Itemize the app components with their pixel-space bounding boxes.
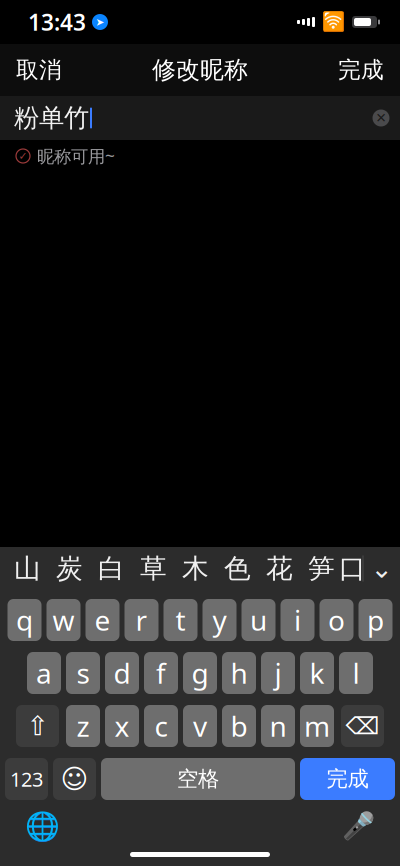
button[interactable]: m	[300, 705, 334, 747]
staticText: v	[193, 707, 207, 745]
staticText: 白	[98, 552, 125, 585]
button[interactable]: 山	[6, 549, 48, 587]
staticText: 完成	[338, 56, 384, 84]
button[interactable]: 空格	[101, 758, 295, 800]
staticText: b	[230, 707, 247, 745]
button[interactable]: 取消	[4, 45, 74, 95]
button[interactable]: z	[66, 705, 100, 747]
button[interactable]: e	[85, 599, 119, 641]
button[interactable]: 炭	[48, 549, 90, 587]
staticText: 山	[14, 552, 41, 585]
staticText: 木	[182, 552, 209, 585]
button[interactable]: t	[163, 599, 197, 641]
staticText: 🎤	[341, 811, 374, 841]
staticText: g	[191, 654, 208, 692]
staticText: ⌄	[370, 553, 392, 584]
button[interactable]: 木	[174, 549, 216, 587]
button[interactable]: Delete	[341, 705, 384, 747]
staticText: x	[114, 707, 129, 745]
staticText: h	[230, 654, 247, 692]
button[interactable]: 笋	[300, 549, 342, 587]
button[interactable]: 白	[90, 549, 132, 587]
button[interactable]: Expand candidates	[363, 549, 399, 587]
button[interactable]: Shift	[16, 705, 59, 747]
staticText: ☺	[60, 764, 88, 794]
staticText: 123	[10, 766, 43, 792]
staticText: ✕	[375, 110, 386, 125]
staticText: y	[212, 601, 226, 639]
button[interactable]: s	[66, 652, 100, 694]
staticText: 炭	[56, 552, 83, 585]
staticText: s	[76, 654, 89, 692]
staticText: c	[154, 707, 167, 745]
staticText: m	[304, 707, 330, 745]
staticText: a	[36, 654, 52, 692]
staticText: e	[94, 601, 110, 639]
staticText: p	[367, 601, 384, 639]
staticText: r	[135, 601, 147, 639]
button[interactable]: f	[144, 652, 178, 694]
button[interactable]: n	[261, 705, 295, 747]
button[interactable]: 123	[5, 758, 48, 800]
staticText: n	[269, 707, 286, 745]
staticText: 修改昵称	[152, 55, 248, 85]
button[interactable]: o	[319, 599, 353, 641]
staticText: ⇧	[26, 711, 48, 741]
staticText: ➤	[95, 16, 104, 28]
staticText: j	[274, 654, 281, 692]
button[interactable]: d	[105, 652, 139, 694]
button[interactable]: r	[124, 599, 158, 641]
staticText: w	[52, 601, 74, 639]
button[interactable]: 完成	[300, 758, 395, 800]
staticText: 完成	[326, 766, 368, 792]
staticText: o	[328, 601, 345, 639]
button[interactable]: Next keyboard	[20, 804, 64, 848]
staticText: 13:43	[28, 7, 86, 37]
staticText: 粉单竹	[14, 102, 89, 133]
staticText: k	[309, 654, 324, 692]
button[interactable]: h	[222, 652, 256, 694]
staticText: 昵称可用~	[37, 144, 115, 167]
button[interactable]: l	[339, 652, 373, 694]
button[interactable]: w	[46, 599, 80, 641]
button[interactable]: p	[358, 599, 392, 641]
staticText: 花	[266, 552, 293, 585]
button[interactable]: x	[105, 705, 139, 747]
button[interactable]: 完成	[326, 45, 396, 95]
staticText: l	[352, 654, 359, 692]
staticText: u	[250, 601, 267, 639]
staticText: i	[294, 601, 301, 639]
button[interactable]: y	[202, 599, 236, 641]
staticText: 色	[224, 552, 251, 585]
staticText: 🛜	[322, 11, 345, 33]
staticText: t	[175, 601, 185, 639]
button[interactable]: Dictation	[336, 804, 380, 848]
staticText: ✓	[18, 150, 27, 162]
staticText: 口	[339, 552, 366, 585]
button[interactable]: b	[222, 705, 256, 747]
button[interactable]: Emoji	[53, 758, 96, 800]
staticText: 🌐	[24, 810, 59, 842]
button[interactable]: Clear text	[364, 101, 398, 135]
staticText: 笋	[308, 552, 335, 585]
button[interactable]: k	[300, 652, 334, 694]
button[interactable]: i	[280, 599, 314, 641]
button[interactable]: c	[144, 705, 178, 747]
staticText: 取消	[16, 56, 62, 84]
staticText: d	[113, 654, 130, 692]
button[interactable]: q	[7, 599, 41, 641]
button[interactable]: 花	[258, 549, 300, 587]
button[interactable]: j	[261, 652, 295, 694]
staticText: 空格	[177, 766, 219, 792]
button[interactable]: 色	[216, 549, 258, 587]
button[interactable]: g	[183, 652, 217, 694]
staticText: ⌫	[345, 712, 379, 740]
button[interactable]: 草	[132, 549, 174, 587]
button[interactable]: v	[183, 705, 217, 747]
button[interactable]: a	[27, 652, 61, 694]
button[interactable]: 口	[342, 549, 362, 587]
staticText: q	[16, 601, 33, 639]
staticText: z	[76, 707, 89, 745]
button[interactable]: u	[241, 599, 275, 641]
staticText: 草	[140, 552, 167, 585]
